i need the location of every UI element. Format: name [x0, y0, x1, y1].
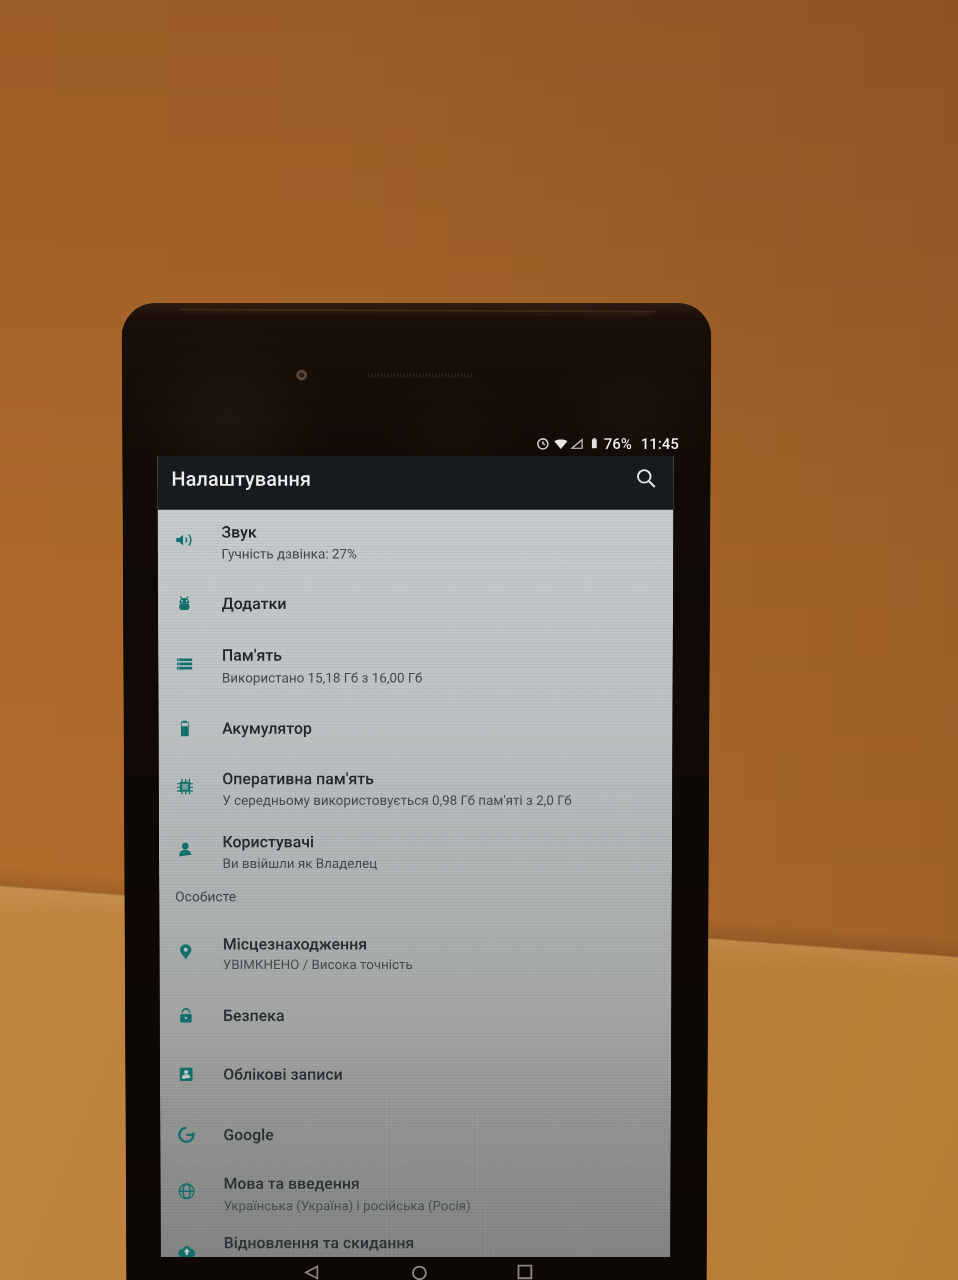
button[interactable]: Back — [289, 1257, 334, 1279]
staticText: Безпека — [223, 1006, 285, 1025]
button[interactable]: Google — [160, 1109, 671, 1160]
staticText: Відновлення та скидання — [224, 1234, 415, 1252]
staticText: Налаштування — [171, 467, 311, 490]
staticText: Додатки — [222, 594, 287, 613]
button[interactable]: Recents — [502, 1257, 547, 1279]
button[interactable]: Облікові записи — [160, 1048, 671, 1099]
staticText: 76% — [604, 435, 633, 453]
button[interactable]: Відновлення та скидання — [161, 1217, 670, 1257]
button[interactable]: Додатки — [158, 577, 673, 629]
staticText: 11:45 — [641, 435, 680, 453]
staticText: УВІМКНЕНО / Висока точність — [223, 956, 413, 972]
button[interactable]: Безпека — [160, 990, 671, 1041]
button[interactable]: Мова та введення — [160, 1158, 671, 1221]
staticText: Оперативна пам'ять — [222, 769, 374, 788]
staticText: Пам'ять — [222, 646, 283, 665]
staticText: Мова та введення — [224, 1174, 360, 1193]
button[interactable]: Пам'ять — [158, 629, 673, 693]
button[interactable]: Місцезнаходження — [159, 918, 672, 980]
button[interactable]: Home — [396, 1257, 442, 1279]
staticText: Використано 15,18 Гб з 16,00 Гб — [222, 669, 423, 685]
button[interactable]: Акумулятор — [158, 702, 673, 754]
staticText: Ви ввійшли як Владелец — [222, 855, 377, 871]
staticText: Облікові записи — [223, 1065, 343, 1084]
button[interactable]: Search — [623, 456, 669, 501]
staticText: Google — [223, 1125, 274, 1144]
button[interactable]: Звук — [157, 506, 673, 569]
staticText: Гучність дзвінка: 27% — [221, 545, 357, 561]
staticText: Звук — [221, 523, 257, 541]
button[interactable]: Оперативна пам'ять — [159, 753, 672, 816]
staticText: Особисте — [175, 889, 236, 904]
staticText: У середньому використовується 0,98 Гб па… — [222, 792, 572, 808]
staticText: Українська (Україна) і російська (Росія) — [224, 1198, 471, 1213]
button[interactable]: Користувачі — [159, 816, 672, 879]
staticText: Акумулятор — [222, 719, 313, 738]
staticText: Користувачі — [222, 832, 315, 851]
staticText: Місцезнаходження — [223, 935, 367, 953]
